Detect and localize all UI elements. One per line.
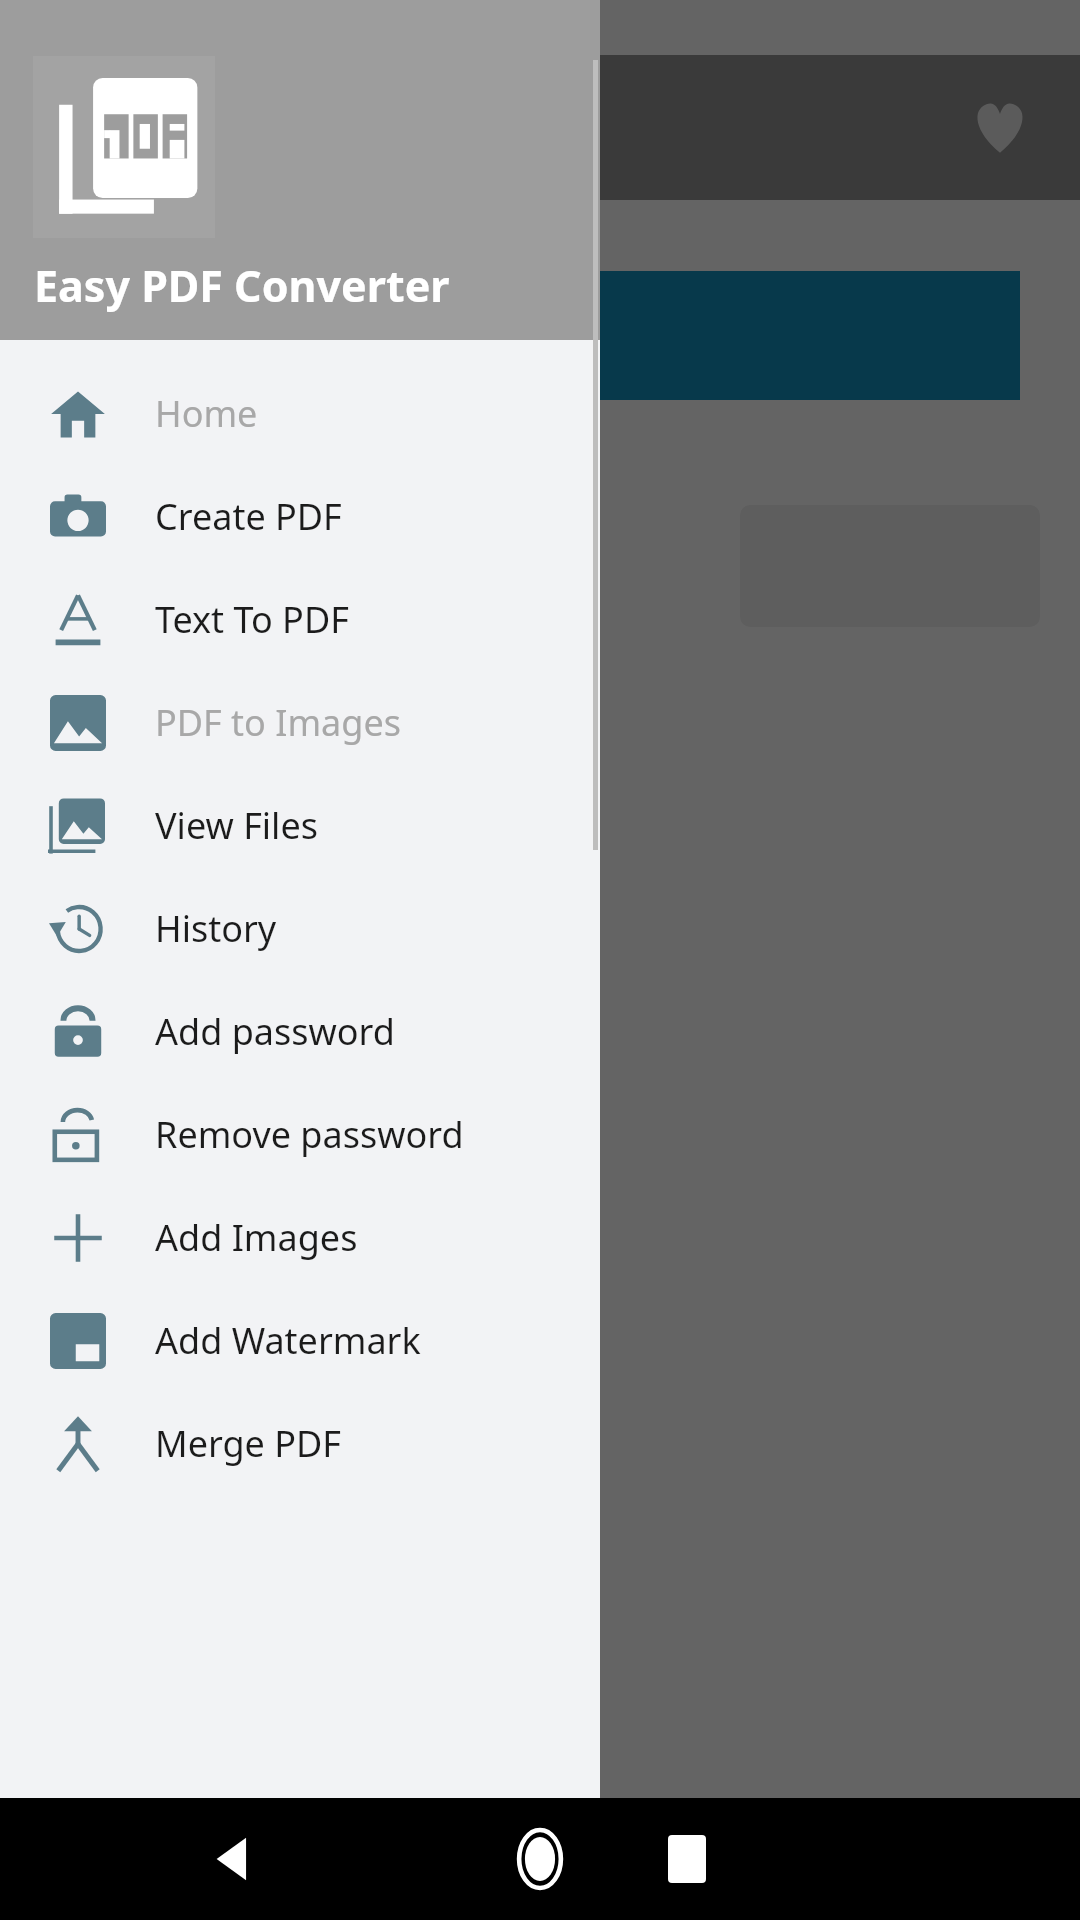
staticText: Text To PDF xyxy=(155,595,349,644)
button[interactable]: Favorite xyxy=(950,78,1050,178)
staticText: Merge PDF xyxy=(155,1419,342,1468)
button[interactable]: History xyxy=(0,877,600,980)
staticText: Home xyxy=(155,389,258,438)
button[interactable]: Back xyxy=(180,1798,290,1920)
button[interactable]: Add Images xyxy=(0,1186,600,1289)
button[interactable]: Home xyxy=(485,1798,595,1920)
button[interactable]: Add Watermark xyxy=(0,1289,600,1392)
staticText: Add Images xyxy=(155,1213,358,1262)
staticText: Create PDF xyxy=(155,492,342,541)
button[interactable]: Merge PDF xyxy=(0,1392,600,1495)
staticText: Remove password xyxy=(155,1110,464,1159)
staticText: Add password xyxy=(155,1007,395,1056)
button[interactable]: PDF to Images xyxy=(0,671,600,774)
staticText: View Files xyxy=(155,801,318,850)
button[interactable]: View Files xyxy=(0,774,600,877)
button[interactable]: Remove password xyxy=(0,1083,600,1186)
button[interactable]: Add password xyxy=(0,980,600,1083)
button[interactable]: Home xyxy=(0,362,600,465)
staticText: History xyxy=(155,904,277,953)
staticText: Add Watermark xyxy=(155,1316,421,1365)
staticText: PDF to Images xyxy=(155,698,401,747)
button[interactable]: Recents xyxy=(632,1798,742,1920)
staticText: Easy PDF Converter xyxy=(34,256,450,315)
button[interactable]: Create PDF xyxy=(0,465,600,568)
button[interactable]: Text To PDF xyxy=(0,568,600,671)
